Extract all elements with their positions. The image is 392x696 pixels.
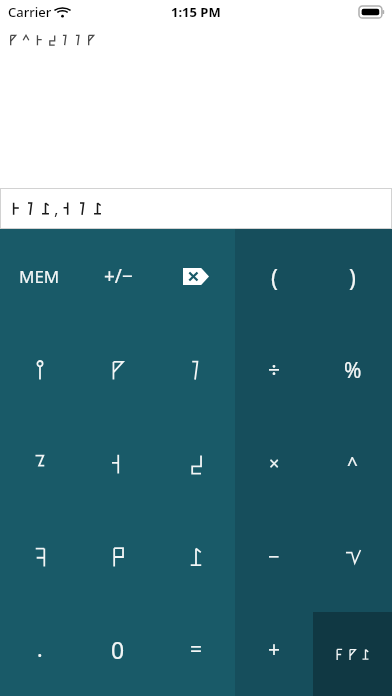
button[interactable]: −	[235, 510, 313, 603]
button[interactable]: Four	[0, 417, 79, 510]
button[interactable]: +/−	[79, 229, 157, 323]
staticText: ÷	[268, 356, 281, 385]
staticText: −	[268, 543, 280, 570]
button[interactable]: 0	[79, 603, 157, 696]
button[interactable]: +	[235, 603, 313, 696]
staticText: )	[349, 261, 356, 292]
button[interactable]: Eight	[79, 510, 157, 603]
button[interactable]: (	[235, 229, 313, 323]
button[interactable]: Seven	[0, 510, 79, 603]
staticText: +/−	[104, 263, 133, 289]
button[interactable]: ,	[0, 188, 392, 229]
button[interactable]: One	[0, 323, 79, 417]
staticText: (	[271, 261, 278, 292]
button[interactable]: MEM	[0, 229, 79, 323]
staticText: ^	[347, 451, 358, 477]
staticText: +	[268, 635, 281, 664]
button[interactable]: ^	[313, 417, 392, 510]
button[interactable]: Square root	[313, 510, 392, 603]
button[interactable]: =	[157, 603, 235, 696]
button[interactable]: Three	[157, 323, 235, 417]
staticText: ,	[54, 197, 59, 220]
staticText: ×	[269, 451, 280, 476]
button[interactable]: Five	[79, 417, 157, 510]
button[interactable]: Six	[157, 417, 235, 510]
button[interactable]: Two	[79, 323, 157, 417]
button[interactable]: Nine	[157, 510, 235, 603]
button[interactable]: )	[313, 229, 392, 323]
button[interactable]: ×	[235, 417, 313, 510]
button[interactable]: .	[0, 603, 79, 696]
staticText: 0	[111, 634, 125, 665]
staticText: .	[37, 635, 43, 664]
staticText: Carrier	[8, 3, 52, 21]
button[interactable]: Backspace	[157, 229, 235, 323]
button[interactable]: %	[313, 323, 392, 417]
staticText: %	[344, 356, 362, 385]
staticText: MEM	[19, 265, 60, 288]
staticText: =	[190, 635, 203, 664]
staticText: 1:15 PM	[171, 3, 221, 21]
button[interactable]: Convert	[313, 612, 392, 696]
button[interactable]: ÷	[235, 323, 313, 417]
